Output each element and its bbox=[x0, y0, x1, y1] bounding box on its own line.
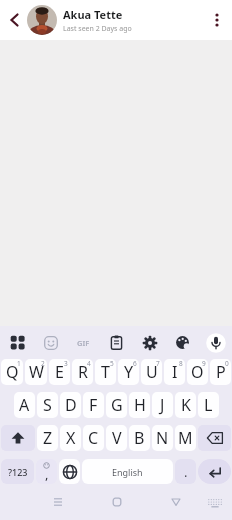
staticText: ?123 bbox=[8, 466, 28, 478]
button[interactable]: M bbox=[175, 425, 196, 451]
button[interactable]: GIF bbox=[67, 326, 100, 359]
button[interactable] bbox=[169, 495, 183, 509]
button[interactable]: ?123 bbox=[1, 459, 34, 484]
staticText: K bbox=[181, 394, 191, 416]
staticText: Q bbox=[6, 361, 19, 383]
staticText: W bbox=[29, 361, 44, 383]
button[interactable] bbox=[100, 326, 133, 359]
staticText: T bbox=[101, 361, 110, 383]
staticText: F bbox=[89, 394, 98, 416]
staticText: 3 bbox=[64, 359, 68, 368]
button[interactable] bbox=[166, 326, 199, 359]
button[interactable]: O bbox=[187, 359, 208, 385]
button[interactable]: D bbox=[60, 392, 81, 418]
button[interactable]: J bbox=[152, 392, 173, 418]
staticText: H bbox=[134, 394, 146, 416]
button[interactable] bbox=[198, 425, 231, 451]
staticText: G bbox=[111, 394, 123, 416]
staticText: 7 bbox=[156, 359, 160, 368]
staticText: R bbox=[78, 361, 88, 383]
button[interactable]: A bbox=[14, 392, 35, 418]
staticText: V bbox=[112, 427, 122, 449]
staticText: M bbox=[178, 427, 193, 449]
staticText: L bbox=[204, 394, 213, 416]
button[interactable] bbox=[34, 326, 67, 359]
staticText: 1 bbox=[17, 359, 21, 368]
button[interactable] bbox=[199, 326, 232, 359]
button[interactable]: . bbox=[175, 459, 196, 484]
staticText: I bbox=[172, 361, 178, 383]
staticText: 6 bbox=[133, 359, 137, 368]
button[interactable] bbox=[6, 11, 24, 29]
staticText: N bbox=[156, 427, 169, 449]
staticText: . bbox=[184, 463, 188, 481]
button[interactable]: L bbox=[198, 392, 219, 418]
button[interactable]: I bbox=[164, 359, 185, 385]
button[interactable]: U bbox=[141, 359, 162, 385]
staticText: C bbox=[88, 427, 99, 449]
button[interactable] bbox=[1, 425, 35, 451]
staticText: 2 bbox=[41, 359, 45, 368]
button[interactable] bbox=[206, 9, 228, 31]
button[interactable]: G bbox=[106, 392, 127, 418]
staticText: 4 bbox=[87, 359, 91, 368]
button[interactable] bbox=[110, 495, 124, 509]
button[interactable] bbox=[51, 495, 65, 509]
button[interactable]: N bbox=[152, 425, 173, 451]
button[interactable]: P bbox=[210, 359, 231, 385]
staticText: 0 bbox=[225, 359, 229, 368]
staticText: P bbox=[216, 361, 226, 383]
staticText: 5 bbox=[110, 359, 114, 368]
staticText: S bbox=[43, 394, 52, 416]
button[interactable]: H bbox=[129, 392, 150, 418]
button[interactable]: V bbox=[106, 425, 127, 451]
button[interactable]: B bbox=[129, 425, 150, 451]
staticText: GIF bbox=[77, 338, 90, 348]
button[interactable]: E bbox=[49, 359, 70, 385]
button[interactable]: T bbox=[95, 359, 116, 385]
button[interactable]: X bbox=[60, 425, 81, 451]
button[interactable]: Q bbox=[1, 359, 23, 385]
button[interactable]: F bbox=[83, 392, 104, 418]
button[interactable]: Y bbox=[118, 359, 139, 385]
button[interactable] bbox=[0, 326, 34, 359]
staticText: Z bbox=[43, 427, 53, 449]
staticText: X bbox=[66, 427, 76, 449]
button[interactable]: S bbox=[37, 392, 58, 418]
button[interactable] bbox=[207, 496, 223, 512]
button[interactable] bbox=[59, 459, 80, 484]
button[interactable] bbox=[198, 459, 231, 484]
button[interactable]: Z bbox=[37, 425, 58, 451]
button[interactable] bbox=[27, 5, 57, 35]
staticText: O bbox=[191, 361, 204, 383]
staticText: J bbox=[160, 394, 165, 416]
staticText: D bbox=[65, 394, 77, 416]
staticText: English bbox=[112, 466, 143, 478]
button[interactable]: K bbox=[175, 392, 196, 418]
button[interactable]: , bbox=[36, 459, 57, 484]
staticText: Y bbox=[124, 361, 134, 383]
button[interactable] bbox=[133, 326, 166, 359]
staticText: 8 bbox=[179, 359, 183, 368]
staticText: 9 bbox=[202, 359, 206, 368]
button[interactable]: English bbox=[82, 459, 173, 484]
staticText: A bbox=[19, 394, 30, 416]
staticText: Last seen 2 Days ago bbox=[63, 24, 132, 34]
staticText: , bbox=[45, 465, 49, 483]
staticText: E bbox=[55, 361, 64, 383]
staticText: U bbox=[146, 361, 158, 383]
button[interactable]: R bbox=[72, 359, 93, 385]
staticText: Akua Tette bbox=[63, 7, 123, 22]
button[interactable]: C bbox=[83, 425, 104, 451]
button[interactable]: W bbox=[25, 359, 47, 385]
staticText: B bbox=[134, 427, 145, 449]
